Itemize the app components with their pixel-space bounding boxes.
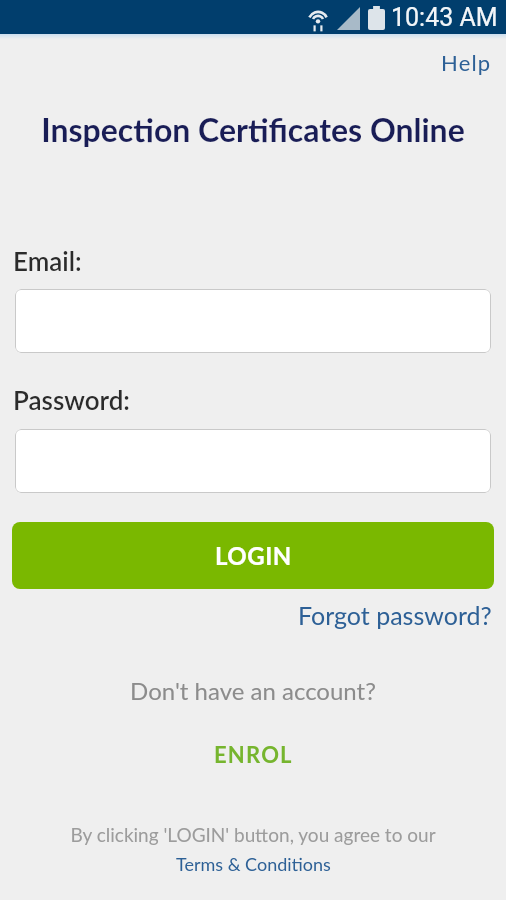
staticText: By clicking 'LOGIN' button, you agree to…	[0, 823, 506, 846]
button[interactable]	[15, 429, 491, 493]
staticText: Inspection Certificates Online	[0, 110, 506, 148]
button[interactable]: Terms & Conditions	[176, 853, 331, 875]
button[interactable]	[15, 289, 491, 353]
staticText: Don't have an account?	[0, 676, 506, 705]
staticText: Email:	[13, 245, 82, 276]
button[interactable]: Help	[441, 49, 492, 75]
staticText: 10:43 AM	[391, 3, 498, 32]
staticText: LOGIN	[215, 541, 292, 570]
button[interactable]: ENROL	[214, 741, 293, 767]
button[interactable]: LOGIN	[12, 522, 494, 589]
button[interactable]: Forgot password?	[298, 600, 492, 630]
staticText: Password:	[13, 384, 130, 415]
